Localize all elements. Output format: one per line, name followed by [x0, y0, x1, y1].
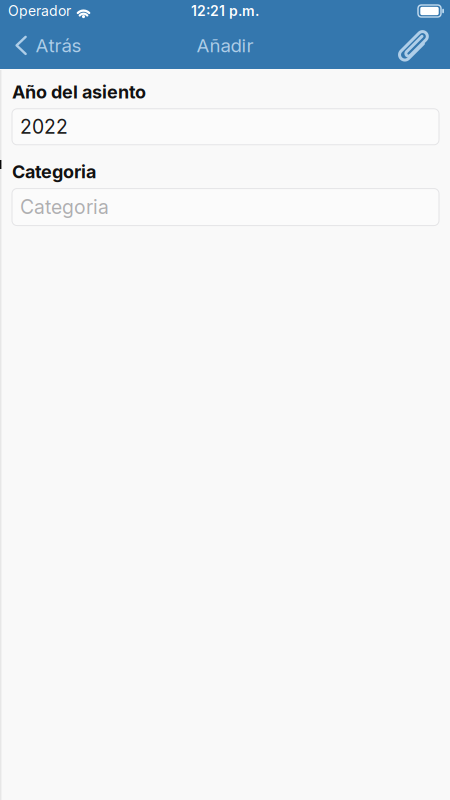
- button[interactable]: Atrás: [0, 22, 91, 68]
- staticText: Categoria: [20, 195, 109, 219]
- button[interactable]: Categoria: [12, 189, 439, 226]
- staticText: Categoria: [12, 161, 96, 183]
- staticText: Año del asiento: [12, 81, 146, 103]
- staticText: Añadir: [196, 34, 253, 57]
- staticText: Atrás: [35, 34, 81, 57]
- button[interactable]: 2022: [12, 109, 439, 145]
- staticText: 12:21 p.m.: [191, 2, 259, 19]
- staticText: 2022: [20, 115, 68, 138]
- staticText: Operador: [8, 2, 71, 19]
- button[interactable]: Adjuntar archivo: [388, 22, 450, 68]
